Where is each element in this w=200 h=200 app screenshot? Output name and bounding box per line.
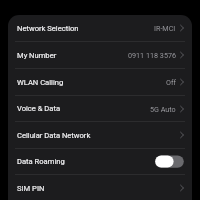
staticText: Off bbox=[166, 78, 176, 86]
staticText: Network Selection bbox=[17, 24, 79, 33]
staticText: SIM PIN bbox=[17, 184, 45, 193]
button[interactable]: Data Roaming toggle bbox=[155, 155, 184, 169]
staticText: Data Roaming bbox=[17, 157, 65, 166]
button[interactable]: WLAN Calling bbox=[8, 69, 192, 95]
button[interactable]: Voice & Data bbox=[8, 96, 192, 121]
staticText: 0911 118 3576 bbox=[128, 51, 176, 59]
staticText: 5G Auto bbox=[150, 105, 176, 113]
staticText: Voice & Data bbox=[17, 104, 61, 113]
button[interactable]: My Number bbox=[8, 42, 192, 68]
button[interactable]: SIM PIN bbox=[8, 175, 192, 200]
staticText: WLAN Calling bbox=[17, 78, 64, 87]
button[interactable]: Cellular Data Network bbox=[8, 122, 192, 148]
staticText: Cellular Data Network bbox=[17, 131, 91, 140]
staticText: My Number bbox=[17, 51, 57, 60]
button[interactable]: Data Roaming bbox=[8, 149, 192, 174]
button[interactable]: Network Selection bbox=[8, 15, 192, 41]
staticText: IR-MCI bbox=[154, 24, 176, 32]
